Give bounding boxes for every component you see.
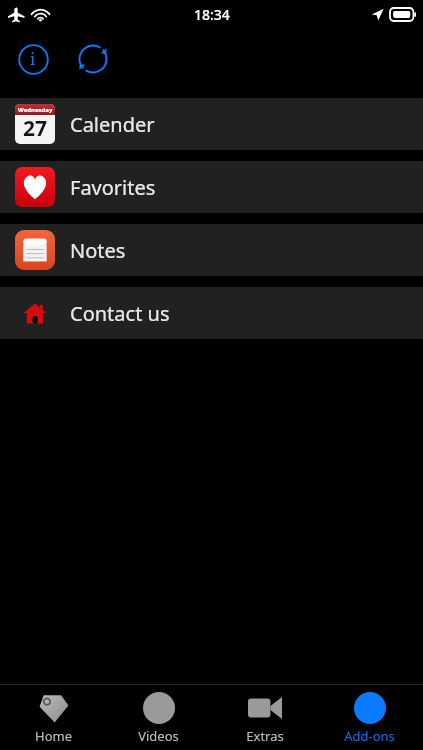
staticText: i xyxy=(30,48,36,70)
staticText: Extras xyxy=(246,727,284,745)
staticText: Favorites xyxy=(70,174,156,201)
staticText: Contact us xyxy=(70,300,170,327)
staticText: Videos xyxy=(138,727,179,745)
staticText: Calender xyxy=(70,111,155,138)
button[interactable]: Contact us xyxy=(0,287,423,339)
button[interactable]: Refresh xyxy=(70,36,116,82)
button[interactable]: Wednesday xyxy=(0,98,423,150)
staticText: 18:34 xyxy=(194,5,230,24)
button[interactable]: Extras xyxy=(212,685,317,750)
staticText: Notes xyxy=(70,237,126,264)
staticText: Home xyxy=(35,727,72,745)
button[interactable]: Home xyxy=(1,685,106,750)
button[interactable]: Videos xyxy=(106,685,211,750)
staticText: Add-ons xyxy=(344,727,395,745)
staticText: 27 xyxy=(23,114,48,143)
staticText: Wednesday xyxy=(18,106,53,114)
button[interactable]: Add-ons xyxy=(317,685,422,750)
button[interactable]: Info xyxy=(10,36,56,82)
button[interactable]: Notes xyxy=(0,224,423,276)
button[interactable]: Favorites xyxy=(0,161,423,213)
